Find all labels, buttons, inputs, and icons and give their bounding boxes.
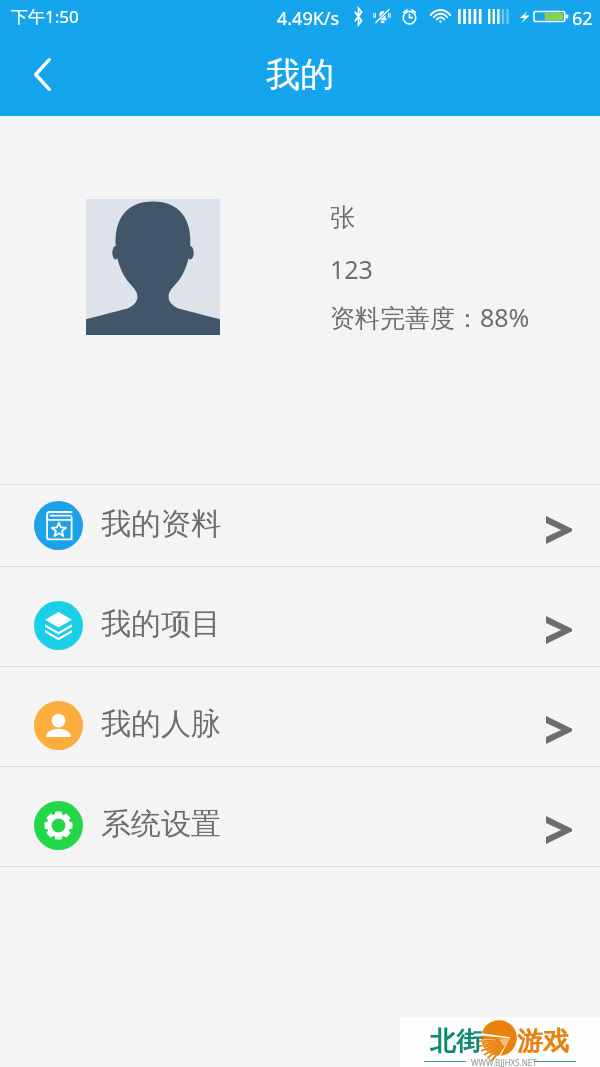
staticText: 北街 (430, 1025, 482, 1058)
staticText: 我的资料 (101, 505, 221, 543)
button[interactable]: 系统设置 (0, 767, 600, 866)
staticText: 系统设置 (101, 805, 221, 843)
button[interactable]: 张 (0, 116, 600, 484)
staticText: 游戏 (517, 1025, 569, 1058)
button[interactable]: Back (0, 40, 76, 108)
staticText: 我的 (266, 53, 334, 96)
staticText: 123 (330, 252, 373, 286)
staticText: 下午1:50 (11, 5, 79, 28)
staticText: 资料完善度：88% (330, 300, 530, 334)
staticText: WWW.BJJHXS.NET (471, 1057, 537, 1067)
button[interactable]: 我的资料 (0, 485, 600, 566)
button[interactable]: 我的项目 (0, 567, 600, 666)
button[interactable]: 我的人脉 (0, 667, 600, 766)
staticText: 62 (572, 6, 593, 31)
staticText: 4.49K/s (277, 6, 340, 31)
staticText: 张 (330, 202, 355, 233)
staticText: 我的项目 (101, 605, 221, 643)
staticText: 我的人脉 (101, 705, 221, 743)
